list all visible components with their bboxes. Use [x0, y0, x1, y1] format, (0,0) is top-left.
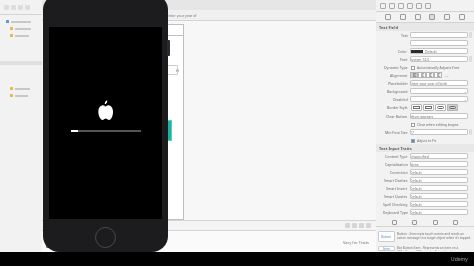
button[interactable]: [10, 92, 42, 99]
button[interactable]: [385, 14, 391, 20]
staticText: Smart Dashes: [384, 178, 408, 183]
button[interactable]: Find Age: [131, 120, 172, 141]
button[interactable]: [46, 233, 56, 248]
staticText: Unspecified: [410, 154, 429, 159]
button[interactable]: Adjust to Fit: [378, 136, 472, 144]
button[interactable]: Placeholder: [378, 79, 472, 87]
staticText: Enter your year of birth: [410, 81, 448, 86]
button[interactable]: Enter your year of birth: [161, 10, 203, 20]
button[interactable]: Correction: [378, 168, 472, 176]
staticText: Dynamic Type: [384, 65, 408, 70]
staticText: —: [445, 73, 449, 78]
staticText: Default: [410, 178, 422, 183]
button[interactable]: Button: [378, 228, 472, 244]
button[interactable]: Text: [378, 31, 472, 39]
button[interactable]: Dynamic Type: [378, 63, 472, 71]
button[interactable]: [392, 220, 397, 225]
button[interactable]: Background: [378, 87, 472, 95]
button[interactable]: Vary for Traits: [343, 240, 370, 245]
button[interactable]: Spell Checking: [378, 200, 472, 208]
button[interactable]: Smart Quotes: [378, 192, 472, 200]
button[interactable]: [10, 25, 42, 32]
button[interactable]: Smart Dashes: [378, 176, 472, 184]
button[interactable]: [416, 3, 422, 9]
staticText: Min Font Size: [385, 130, 408, 135]
button[interactable]: [459, 14, 465, 20]
staticText: ⌄: [464, 90, 467, 93]
button[interactable]: Clear Button: [378, 112, 472, 120]
button[interactable]: Clear when editing begins: [378, 120, 472, 128]
button[interactable]: [6, 18, 42, 25]
staticText: Placeholder: [388, 81, 408, 86]
button[interactable]: Keyboard Type: [378, 208, 472, 216]
button[interactable]: Disabled: [378, 95, 472, 103]
staticText: Alignment: [390, 73, 408, 78]
button[interactable]: [444, 14, 450, 20]
button[interactable]: Capitalization: [378, 160, 472, 168]
button[interactable]: [400, 14, 406, 20]
staticText: Default: [410, 210, 422, 215]
button[interactable]: Font: [378, 55, 472, 63]
staticText: Default: [410, 170, 422, 175]
button[interactable]: [10, 32, 42, 39]
button[interactable]: [398, 3, 404, 9]
button[interactable]: Color: [378, 47, 472, 55]
button[interactable]: [10, 85, 42, 92]
button[interactable]: Item: [378, 246, 472, 251]
button[interactable]: [425, 3, 431, 9]
button[interactable]: [412, 220, 417, 225]
button[interactable]: Enter your year of birth: [83, 65, 178, 75]
button[interactable]: [378, 39, 472, 47]
button[interactable]: [453, 220, 458, 225]
button[interactable]: [415, 14, 421, 20]
button[interactable]: [389, 3, 395, 9]
button[interactable]: [92, 233, 99, 244]
button[interactable]: Smart Insert: [378, 184, 472, 192]
button[interactable]: [407, 3, 413, 9]
staticText: Spell Checking: [383, 202, 408, 207]
staticText: Default: [410, 194, 422, 199]
button[interactable]: Border Style: [378, 103, 472, 112]
staticText: Item: [383, 247, 391, 251]
button[interactable]: Content Type: [378, 152, 472, 160]
button[interactable]: Alignment: [378, 71, 472, 79]
button[interactable]: [380, 3, 386, 9]
staticText: Bar Button Item - Represents an item on …: [397, 246, 472, 251]
button[interactable]: [433, 220, 438, 225]
button[interactable]: [429, 14, 435, 20]
button[interactable]: Min Font Size: [378, 128, 472, 136]
